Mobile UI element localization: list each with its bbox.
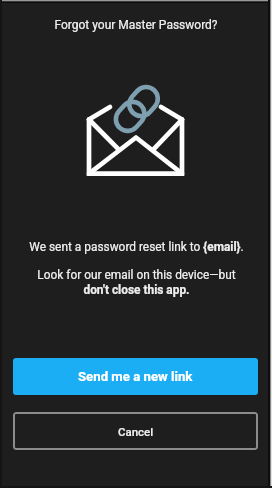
staticText: Forgot your Master Password? [0,18,272,32]
button[interactable]: Send me a new link [13,358,258,395]
staticText: Send me a new link [78,369,193,384]
staticText: Look for our email on this device—but do… [37,268,236,297]
staticText: We sent a password reset link to {email}… [29,240,244,254]
staticText: Cancel [118,425,154,438]
button[interactable]: Cancel [13,412,258,450]
